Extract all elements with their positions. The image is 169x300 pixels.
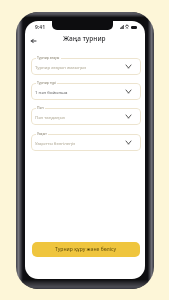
- button[interactable]: Back: [26, 33, 41, 48]
- staticText: Турнир атауы: [37, 55, 60, 60]
- button[interactable]: Турнир құру және бөлісу: [32, 242, 140, 257]
- staticText: Турнир түрі: [37, 80, 56, 85]
- button[interactable]: Турнир атауын жазыңыз: [31, 58, 141, 75]
- staticText: Турнир атауын жазыңыз: [35, 64, 87, 70]
- staticText: Жаңа турнир: [63, 34, 106, 43]
- staticText: 9:41: [35, 24, 45, 31]
- staticText: 1 пән бойынша: [35, 89, 68, 95]
- staticText: Уақытты белгілеңіз: [35, 140, 76, 146]
- button[interactable]: Пән таңдаңыз: [31, 108, 141, 125]
- staticText: Пән: [37, 105, 44, 110]
- button[interactable]: 1 пән бойынша: [31, 83, 141, 100]
- staticText: Уақыт: [37, 131, 47, 136]
- button[interactable]: Уақытты белгілеңіз: [31, 134, 141, 151]
- staticText: Пән таңдаңыз: [35, 114, 65, 120]
- staticText: Турнир құру және бөлісу: [55, 246, 117, 253]
